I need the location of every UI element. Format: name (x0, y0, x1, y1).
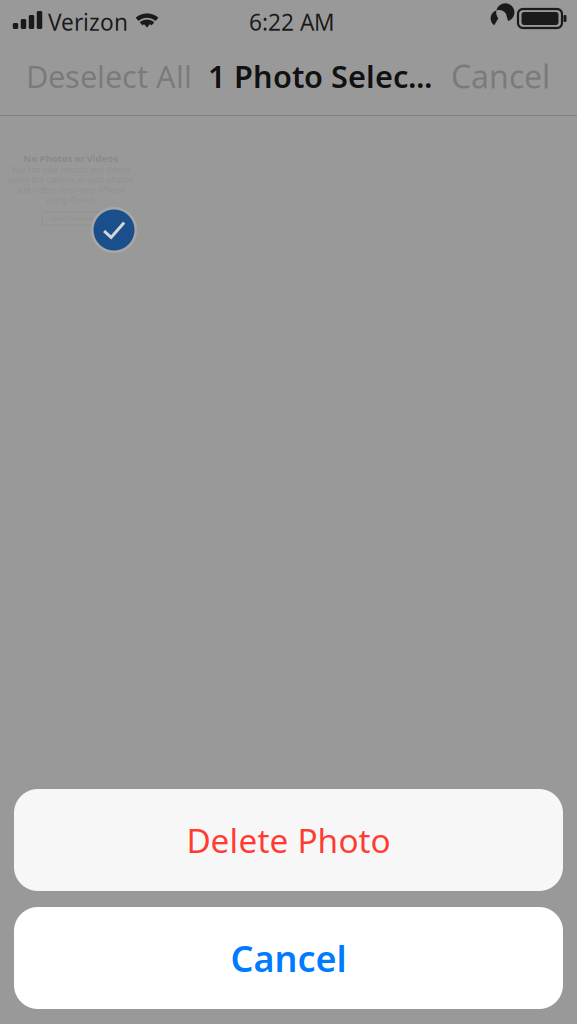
staticText: 1 Photo Selec... (208, 56, 432, 96)
button[interactable]: Cancel (14, 907, 563, 1009)
staticText: Deselect All (26, 56, 192, 96)
staticText: Cancel (451, 55, 550, 97)
button[interactable]: Open Camera (42, 212, 100, 225)
staticText: No Photos or Videos (23, 152, 118, 165)
button[interactable]: Deselect All (26, 41, 194, 111)
staticText: Cancel (230, 934, 346, 982)
staticText: Verizon (48, 7, 128, 37)
staticText: 6:22 AM (249, 7, 335, 37)
button[interactable]: Cancel (451, 41, 551, 111)
button[interactable]: Delete Photo (14, 789, 563, 891)
staticText: Delete Photo (186, 818, 390, 862)
